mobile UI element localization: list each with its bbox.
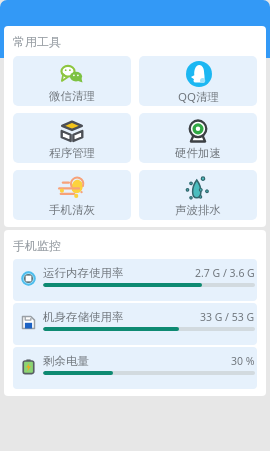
staticText: 30 % [231,354,255,368]
staticText: QQ清理 [178,89,219,105]
button[interactable]: 硬件加速 [139,113,257,163]
staticText: 手机监控 [13,238,61,253]
staticText: 程序管理 [49,146,95,160]
button[interactable]: 剩余电量 [13,347,257,389]
staticText: 硬件加速 [175,146,221,160]
button[interactable]: 运行内存使用率 [13,259,257,301]
staticText: 声波排水 [175,203,221,217]
button[interactable]: QQ清理 [139,56,257,106]
staticText: 微信清理 [49,89,95,103]
button[interactable]: 机身存储使用率 [13,303,257,345]
staticText: 手机清灰 [49,203,95,217]
button[interactable]: 声波排水 [139,170,257,220]
staticText: 机身存储使用率 [43,310,124,324]
button[interactable]: 微信清理 [13,56,131,106]
staticText: 常用工具 [13,34,61,49]
staticText: 剩余电量 [43,354,89,368]
staticText: 33 G / 53 G [200,310,255,324]
button[interactable]: 程序管理 [13,113,131,163]
button[interactable]: 手机清灰 [13,170,131,220]
staticText: 运行内存使用率 [43,266,124,280]
staticText: 2.7 G / 3.6 G [195,266,255,280]
